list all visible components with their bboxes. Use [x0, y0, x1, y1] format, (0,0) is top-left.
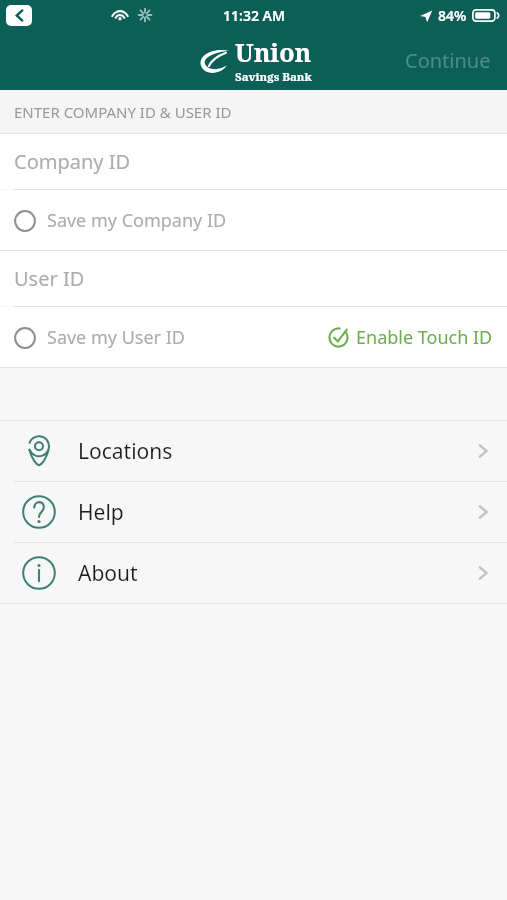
button[interactable]: Help [0, 482, 507, 542]
staticText: Company ID [14, 148, 131, 175]
button[interactable]: Enable Touch ID [318, 317, 507, 358]
button[interactable]: Company ID [0, 134, 507, 189]
staticText: Locations [78, 437, 475, 466]
staticText: Save my User ID [47, 325, 185, 350]
button[interactable]: Save my User ID [0, 317, 195, 358]
staticText: Enable Touch ID [356, 325, 493, 350]
button[interactable]: Continue [389, 37, 507, 84]
staticText: Save my Company ID [47, 208, 227, 233]
staticText: Help [78, 498, 475, 527]
button[interactable]: Locations [0, 421, 507, 481]
button[interactable]: User ID [0, 251, 507, 306]
staticText: User ID [14, 265, 85, 292]
button[interactable]: About [0, 543, 507, 603]
staticText: Union [235, 35, 312, 69]
staticText: 11:32 AM [223, 6, 285, 25]
staticText: 84% [438, 6, 467, 25]
button[interactable]: Back [6, 5, 32, 26]
staticText: Continue [405, 47, 491, 74]
staticText: About [78, 559, 475, 588]
staticText: ENTER COMPANY ID & USER ID [14, 102, 232, 122]
button[interactable]: Save my Company ID [0, 200, 237, 241]
staticText: Savings Bank [235, 69, 312, 85]
